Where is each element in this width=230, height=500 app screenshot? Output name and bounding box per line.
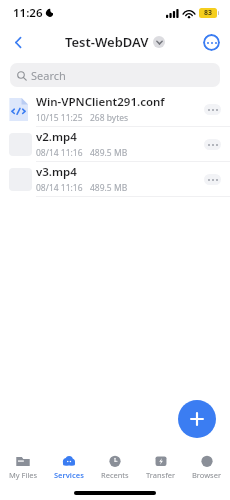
button[interactable]: Search [10, 63, 220, 87]
staticText: Search [31, 68, 66, 83]
button[interactable]: Services [46, 454, 92, 480]
button[interactable]: v3.mp4 [0, 162, 230, 197]
button[interactable]: My Files [0, 454, 46, 480]
staticText: v3.mp4 [36, 164, 77, 180]
button[interactable]: Recents [92, 454, 138, 480]
staticText: 11:26 [13, 5, 43, 21]
staticText: 83 [204, 8, 213, 18]
staticText: Browser [192, 470, 222, 480]
button[interactable]: v2.mp4 [0, 127, 230, 162]
button[interactable]: More actions [204, 139, 221, 150]
staticText: v2.mp4 [36, 129, 77, 145]
staticText: 489.5 MB [90, 182, 128, 194]
button[interactable]: Browser [184, 454, 230, 480]
staticText: 08/14 11:16 [36, 182, 83, 194]
staticText: Recents [101, 470, 129, 480]
button[interactable]: Add [178, 400, 216, 438]
button[interactable]: Win-VPNClient291.conf [0, 92, 230, 127]
staticText: Transfer [146, 470, 176, 480]
staticText: 10/15 11:25 [36, 112, 83, 124]
staticText: Win-VPNClient291.conf [36, 94, 165, 110]
staticText: Services [54, 470, 84, 480]
staticText: My Files [9, 470, 38, 480]
staticText: 489.5 MB [90, 147, 128, 159]
button[interactable]: Transfer [138, 454, 184, 480]
button[interactable]: Test-WebDAV [65, 33, 165, 51]
button[interactable]: More actions [204, 174, 221, 185]
staticText: 08/14 11:16 [36, 147, 83, 159]
button[interactable]: Back [5, 29, 31, 55]
button[interactable]: More options [203, 34, 220, 51]
button[interactable]: More actions [204, 104, 221, 115]
staticText: 268 bytes [90, 112, 129, 124]
staticText: Test-WebDAV [65, 33, 149, 51]
